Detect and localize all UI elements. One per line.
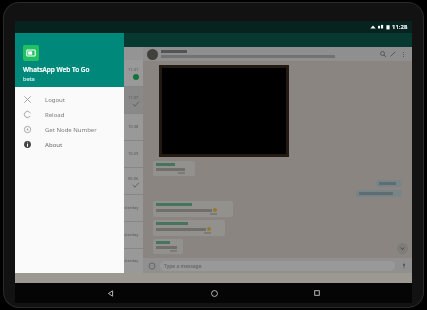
button[interactable]: 05:06 <box>15 168 143 194</box>
button[interactable]: Emoji <box>147 261 156 270</box>
button[interactable]: 10:29 <box>15 141 143 167</box>
button[interactable] <box>153 220 225 236</box>
button[interactable]: Scroll to bottom <box>397 243 408 254</box>
button[interactable]: 11:31 <box>15 60 143 86</box>
staticText: WhatsApp Web To Go <box>23 65 90 74</box>
button[interactable] <box>356 190 402 197</box>
staticText: About <box>45 141 63 149</box>
button[interactable]: Attach <box>388 49 398 59</box>
button[interactable]: Recent apps <box>309 285 325 301</box>
button[interactable]: Voice message <box>399 261 408 270</box>
button[interactable]: Yesterday <box>15 195 143 221</box>
staticText: Logout <box>45 96 65 104</box>
button[interactable]: Yesterday <box>15 249 143 273</box>
staticText: Yesterday <box>120 258 139 263</box>
button[interactable]: Reload <box>15 107 124 122</box>
button[interactable] <box>376 180 402 187</box>
button[interactable]: 10:38 <box>15 114 143 140</box>
button[interactable]: Home <box>206 285 222 301</box>
button[interactable]: Type a message <box>160 261 395 271</box>
button[interactable]: Logout <box>15 92 124 107</box>
staticText: 05:06 <box>128 176 139 181</box>
staticText: Reload <box>45 111 65 119</box>
staticText: 10:29 <box>128 151 139 156</box>
button[interactable]: More options <box>398 49 408 59</box>
button[interactable]: Yesterday <box>15 222 143 248</box>
staticText: 10:38 <box>128 124 139 129</box>
button[interactable]: Back <box>102 285 118 301</box>
button[interactable] <box>153 201 233 217</box>
staticText: Get Node Number <box>45 126 97 134</box>
staticText: Yesterday <box>120 205 139 210</box>
button[interactable] <box>153 161 195 176</box>
staticText: Type a message <box>164 263 202 270</box>
staticText: 11:28 <box>392 23 408 31</box>
staticText: Yesterday <box>120 232 139 237</box>
staticText: beta <box>23 75 35 82</box>
button[interactable]: 11:07 <box>15 87 143 113</box>
staticText: 11:31 <box>128 67 139 72</box>
staticText: 11:07 <box>128 95 139 100</box>
button[interactable]: About <box>15 137 124 152</box>
button[interactable]: Get Node Number <box>15 122 124 137</box>
button[interactable]: Search <box>378 49 388 59</box>
button[interactable] <box>153 239 183 254</box>
